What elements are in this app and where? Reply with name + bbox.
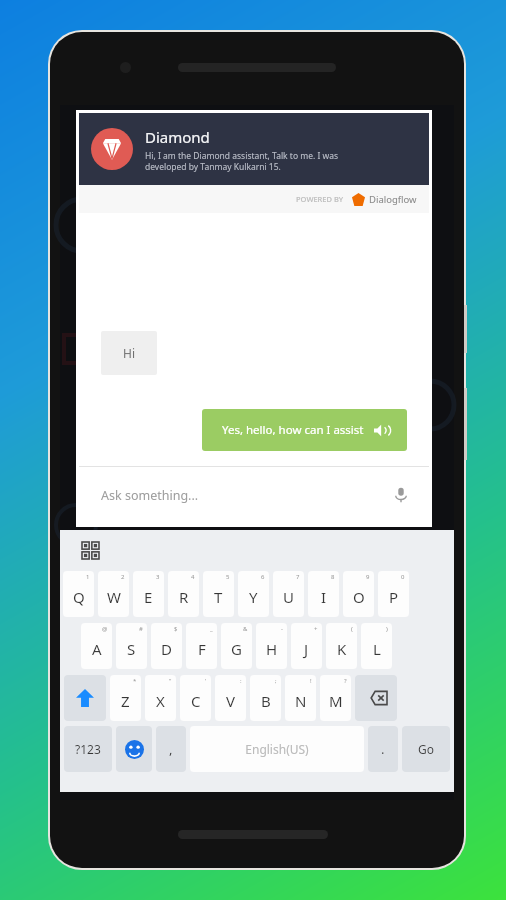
staticText: Dialogflow <box>369 193 417 206</box>
button[interactable]: English(US) <box>190 726 364 772</box>
staticText: 9 <box>366 573 370 581</box>
staticText: @ <box>102 625 108 633</box>
button[interactable]: & <box>221 623 252 669</box>
button[interactable]: Voice input <box>391 485 411 505</box>
button[interactable]: _ <box>186 623 217 669</box>
button[interactable]: : <box>215 675 246 721</box>
staticText: I <box>321 587 327 607</box>
staticText: + <box>314 625 318 633</box>
staticText: 2 <box>121 573 125 581</box>
button[interactable]: ? <box>320 675 351 721</box>
staticText: 8 <box>331 573 335 581</box>
staticText: Y <box>249 587 258 607</box>
button[interactable]: Yes, hello, how can I assist <box>202 409 407 451</box>
staticText: ! <box>310 677 312 685</box>
button[interactable]: ( <box>326 623 357 669</box>
button[interactable]: @ <box>81 623 112 669</box>
staticText: R <box>179 587 189 607</box>
staticText: POWERED BY <box>296 194 344 204</box>
staticText: 5 <box>226 573 230 581</box>
staticText: J <box>304 639 309 659</box>
button[interactable]: ' <box>180 675 211 721</box>
staticText: " <box>169 677 172 685</box>
staticText: Yes, hello, how can I assist <box>222 422 364 438</box>
staticText: : <box>240 677 242 685</box>
button[interactable]: Backspace <box>355 675 397 721</box>
staticText: ' <box>205 677 207 685</box>
staticText: P <box>389 587 399 607</box>
staticText: Go <box>418 741 434 757</box>
staticText: A <box>92 639 102 659</box>
staticText: C <box>191 691 201 711</box>
button[interactable] <box>116 726 152 772</box>
staticText: T <box>214 587 223 607</box>
staticText: K <box>337 639 347 659</box>
staticText: S <box>127 639 136 659</box>
staticText: E <box>144 587 153 607</box>
staticText: ; <box>275 677 277 685</box>
staticText: B <box>261 691 271 711</box>
staticText: . <box>381 740 385 758</box>
staticText: F <box>198 639 206 659</box>
staticText: L <box>373 639 381 659</box>
staticText: , <box>169 740 173 758</box>
staticText: ?123 <box>75 741 101 757</box>
staticText: Z <box>121 691 130 711</box>
button[interactable]: Ask something... <box>79 466 429 524</box>
staticText: _ <box>210 625 213 633</box>
staticText: 3 <box>156 573 160 581</box>
staticText: N <box>295 691 307 711</box>
staticText: * <box>133 677 137 685</box>
button[interactable]: + <box>291 623 322 669</box>
staticText: Hi, I am the Diamond assistant, Talk to … <box>145 150 339 172</box>
staticText: V <box>226 691 236 711</box>
staticText: H <box>266 639 278 659</box>
button[interactable]: Keyboard menu <box>78 538 102 562</box>
button[interactable]: ?123 <box>64 726 112 772</box>
button[interactable]: Shift <box>64 675 106 721</box>
button[interactable]: 9 <box>343 571 374 617</box>
staticText: O <box>353 587 365 607</box>
button[interactable]: $ <box>151 623 182 669</box>
staticText: - <box>281 625 283 633</box>
staticText: ? <box>344 677 347 685</box>
button[interactable]: 2 <box>98 571 129 617</box>
staticText: 0 <box>401 573 405 581</box>
button[interactable]: " <box>145 675 176 721</box>
staticText: 7 <box>296 573 300 581</box>
button[interactable]: 8 <box>308 571 339 617</box>
button[interactable]: 4 <box>168 571 199 617</box>
button[interactable]: Diamond <box>79 113 429 185</box>
staticText: G <box>231 639 242 659</box>
staticText: & <box>243 625 248 633</box>
staticText: 1 <box>86 573 90 581</box>
button[interactable]: ; <box>250 675 281 721</box>
button[interactable]: 3 <box>133 571 164 617</box>
staticText: $ <box>174 625 178 633</box>
staticText: M <box>329 691 343 711</box>
button[interactable]: ) <box>361 623 392 669</box>
button[interactable]: 5 <box>203 571 234 617</box>
staticText: W <box>107 587 121 607</box>
button[interactable]: * <box>110 675 141 721</box>
button[interactable]: Go <box>402 726 450 772</box>
button[interactable]: Hi <box>101 331 157 375</box>
button[interactable]: - <box>256 623 287 669</box>
button[interactable]: ! <box>285 675 316 721</box>
button[interactable]: , <box>156 726 186 772</box>
staticText: Ask something... <box>101 487 391 504</box>
button[interactable]: 1 <box>63 571 94 617</box>
staticText: U <box>283 587 294 607</box>
staticText: Q <box>73 587 85 607</box>
button[interactable]: 7 <box>273 571 304 617</box>
staticText: ( <box>351 625 353 633</box>
button[interactable]: 0 <box>378 571 409 617</box>
staticText: 4 <box>191 573 195 581</box>
staticText: Diamond <box>145 127 210 147</box>
button[interactable]: . <box>368 726 398 772</box>
button[interactable]: 6 <box>238 571 269 617</box>
staticText: English(US) <box>245 741 309 757</box>
button[interactable]: # <box>116 623 147 669</box>
staticText: Hi <box>123 345 135 361</box>
staticText: ) <box>386 625 388 633</box>
